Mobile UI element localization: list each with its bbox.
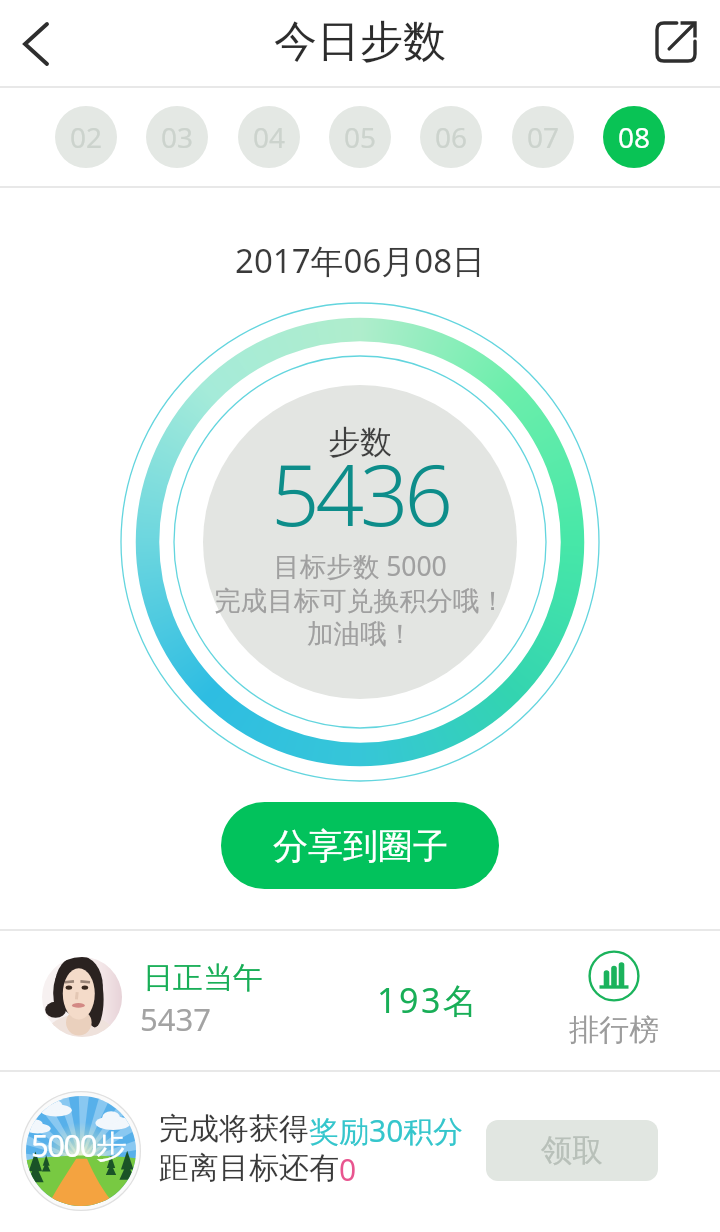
staticText: 领取 [541,1131,603,1170]
staticText: 05 [344,118,377,156]
staticText: 5000步 [31,1124,126,1166]
staticText: 今日步数 [274,15,446,69]
button[interactable]: 08 [603,106,665,168]
staticText: 2017年06月08日 [235,238,486,283]
staticText: 5436 [271,435,450,551]
staticText: 03 [161,118,194,156]
button[interactable]: 04 [238,106,300,168]
staticText: 0 [339,1149,357,1190]
button[interactable]: 03 [146,106,208,168]
staticText: 排行榜 [569,1011,659,1049]
staticText: 06 [435,118,468,156]
staticText: 04 [253,118,286,156]
staticText: 日正当午 [143,959,263,997]
button[interactable]: 排行榜 [556,950,672,1049]
button[interactable]: 分享到圈子 [221,802,499,889]
button[interactable]: Share [634,0,720,86]
staticText: 5437 [140,998,211,1040]
button[interactable]: Back [0,0,86,86]
staticText: 07 [527,118,560,156]
staticText: 02 [70,118,103,156]
button[interactable]: 05 [329,106,391,168]
button[interactable]: 领取 [486,1120,658,1181]
staticText: 距离目标还有 [159,1149,339,1187]
button[interactable]: 07 [512,106,574,168]
staticText: 完成将获得 [159,1110,309,1148]
staticText: 08 [618,118,651,156]
staticText: 193名 [377,977,480,1023]
button[interactable]: 日正当午 [30,940,360,1060]
staticText: 目标步数 5000 完成目标可兑换积分哦！ 加油哦！ [214,548,506,651]
button[interactable]: 06 [420,106,482,168]
staticText: 奖励30积分 [309,1110,464,1151]
button[interactable]: 02 [55,106,117,168]
staticText: 步数 [328,422,392,462]
staticText: 分享到圈子 [273,824,448,868]
